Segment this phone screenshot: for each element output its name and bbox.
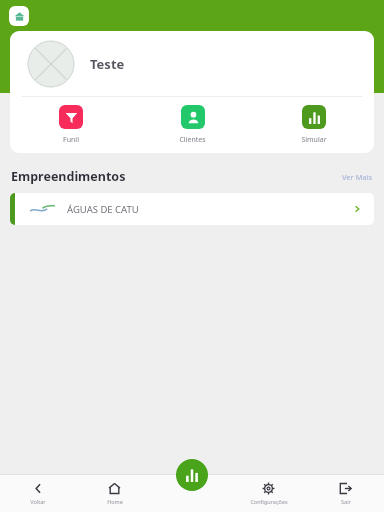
button[interactable]: Funil <box>10 97 132 153</box>
button[interactable]: Configurações <box>230 474 307 512</box>
button[interactable]: Home <box>76 474 153 512</box>
button[interactable]: ÁGUAS DE CATU <box>10 193 374 225</box>
button[interactable]: Logo <box>9 6 29 26</box>
staticText: Home <box>107 498 123 505</box>
staticText: Empreendimentos <box>11 168 126 185</box>
staticText: Ver Mais <box>342 172 373 182</box>
button[interactable]: Teste <box>10 31 374 96</box>
staticText: Teste <box>90 55 125 73</box>
staticText: Clientes <box>179 135 206 145</box>
button[interactable]: Ver Mais <box>342 172 373 182</box>
staticText: Funil <box>63 135 79 145</box>
staticText: Configurações <box>250 498 288 505</box>
staticText: Sair <box>341 498 351 505</box>
button[interactable]: Clientes <box>132 97 253 153</box>
staticText: Simular <box>301 135 327 145</box>
button[interactable]: Simular <box>253 97 374 153</box>
button[interactable]: Sair <box>307 474 384 512</box>
staticText: Voltar <box>30 498 46 505</box>
button[interactable]: Simular <box>176 459 208 491</box>
staticText: ÁGUAS DE CATU <box>67 203 139 216</box>
button[interactable]: Voltar <box>0 474 76 512</box>
